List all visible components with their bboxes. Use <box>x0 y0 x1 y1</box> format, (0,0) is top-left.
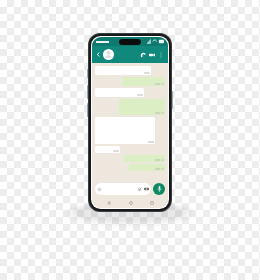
button[interactable] <box>95 117 155 144</box>
button[interactable] <box>95 146 120 153</box>
button[interactable]: Back <box>95 51 102 58</box>
button[interactable] <box>124 155 165 162</box>
button[interactable] <box>129 164 165 171</box>
button[interactable]: Back <box>104 198 113 207</box>
button[interactable]: Video call <box>148 51 156 59</box>
button[interactable]: Home <box>126 198 135 207</box>
button[interactable] <box>95 183 151 195</box>
button[interactable]: Record voice message <box>153 183 165 195</box>
button[interactable] <box>95 66 151 75</box>
button[interactable]: More options <box>157 51 165 59</box>
button[interactable] <box>122 77 165 86</box>
button[interactable]: Contact profile <box>103 49 114 60</box>
button[interactable] <box>119 99 165 115</box>
button[interactable] <box>95 88 144 97</box>
button[interactable]: Voice call <box>139 51 147 59</box>
button[interactable]: Recent apps <box>147 198 156 207</box>
